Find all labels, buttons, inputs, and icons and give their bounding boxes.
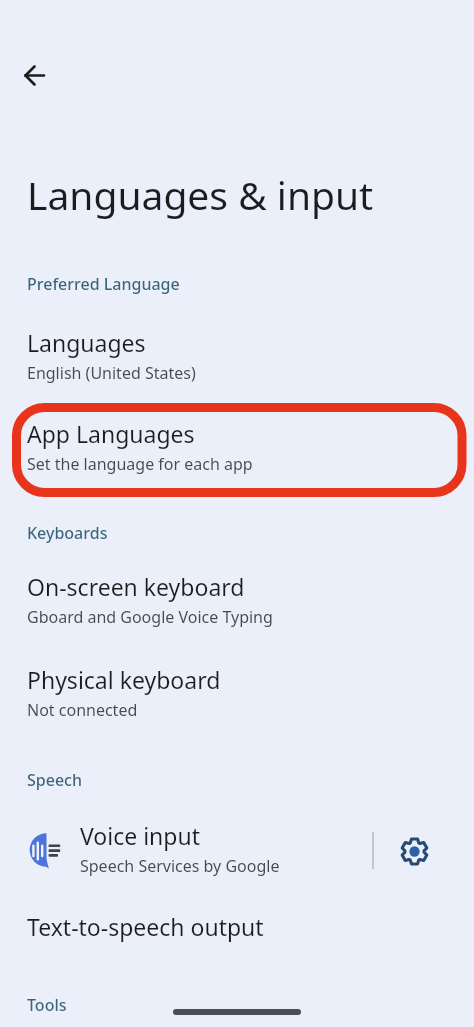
staticText: Physical keyboard <box>27 664 221 695</box>
staticText: Tools <box>27 994 67 1016</box>
button[interactable]: Voice input <box>0 816 474 880</box>
staticText: Set the language for each app <box>27 453 253 475</box>
staticText: Gboard and Google Voice Typing <box>27 606 273 628</box>
staticText: Keyboards <box>27 522 108 544</box>
staticText: Speech <box>27 769 82 791</box>
staticText: App Languages <box>27 418 195 449</box>
button[interactable]: Physical keyboard <box>0 664 474 730</box>
staticText: Languages & input <box>27 168 374 221</box>
staticText: Text-to-speech output <box>27 911 264 942</box>
staticText: English (United States) <box>27 362 196 384</box>
staticText: On-screen keyboard <box>27 571 245 602</box>
button[interactable]: Text-to-speech output <box>0 905 474 953</box>
staticText: Preferred Language <box>27 273 180 295</box>
staticText: Voice input <box>80 820 200 851</box>
button[interactable] <box>400 837 428 865</box>
button[interactable]: Languages <box>0 327 474 393</box>
staticText: Speech Services by Google <box>80 855 280 877</box>
staticText: Languages <box>27 327 146 358</box>
staticText: Not connected <box>27 699 138 721</box>
button[interactable] <box>15 56 53 94</box>
button[interactable]: On-screen keyboard <box>0 571 474 637</box>
button[interactable]: App Languages <box>0 418 474 484</box>
